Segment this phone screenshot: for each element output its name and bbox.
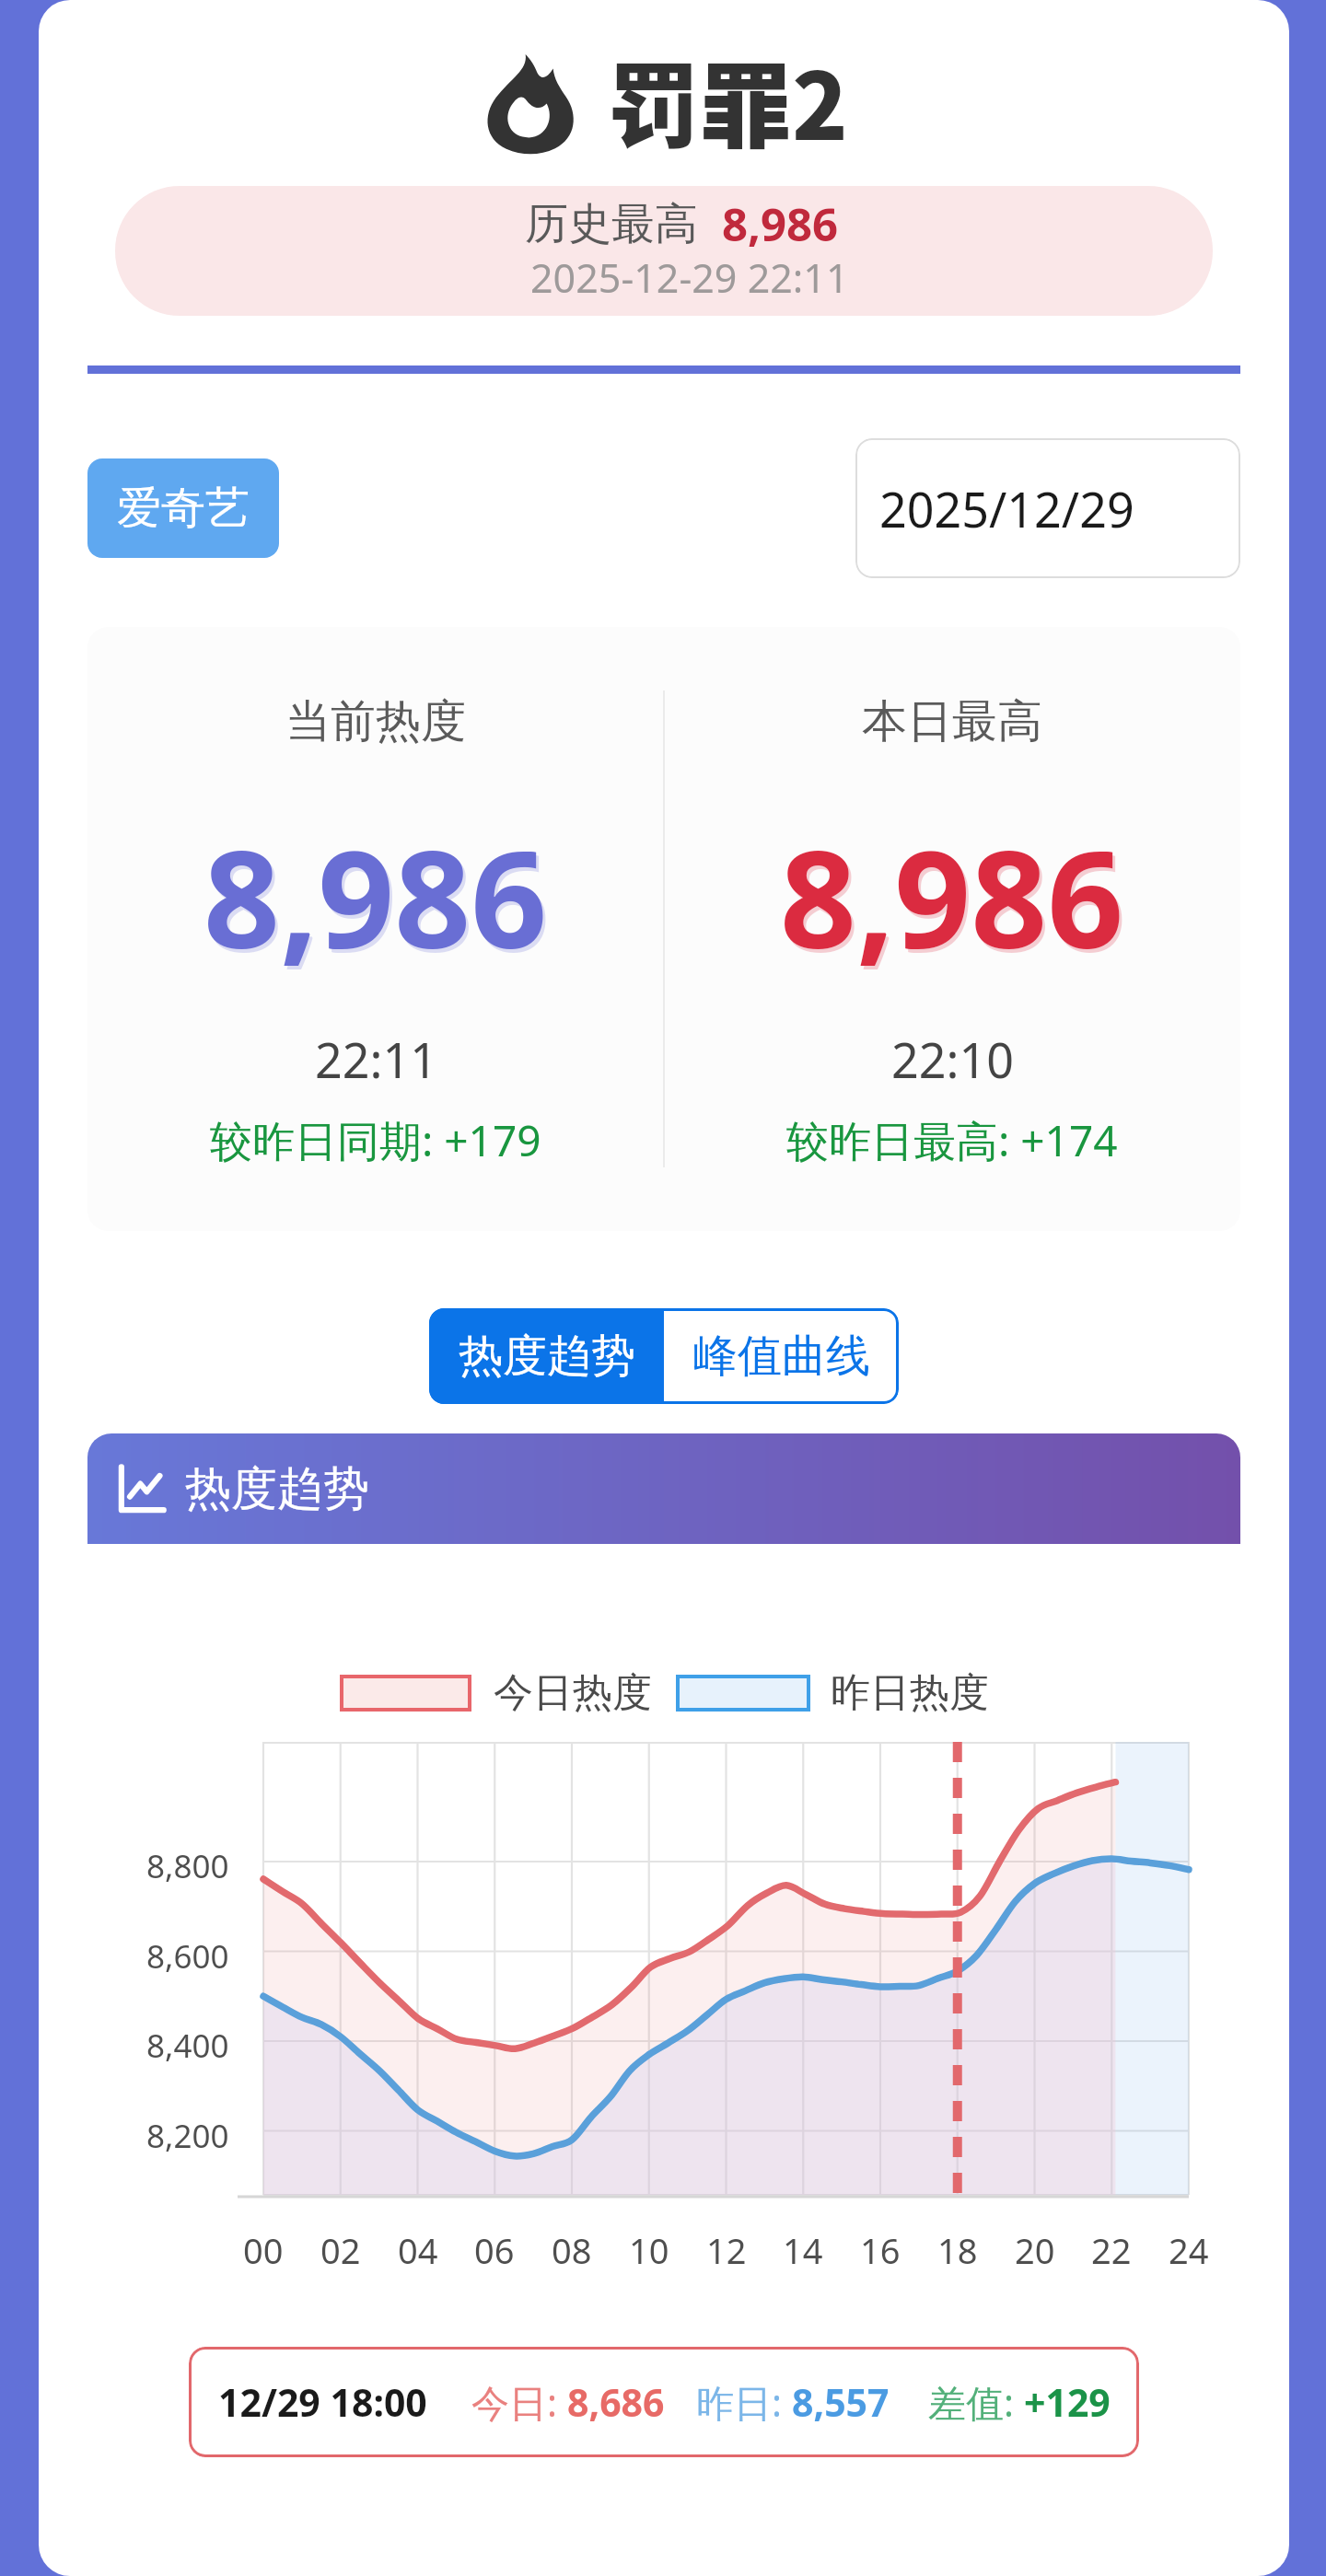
staticText: 热度趋势	[459, 1329, 635, 1384]
staticText: 峰值曲线	[693, 1329, 870, 1384]
staticText: 8,600	[146, 1934, 229, 1978]
staticText: 历史最高	[525, 197, 698, 251]
staticText: 8,200	[146, 2114, 229, 2158]
button[interactable]: 爱奇艺	[87, 458, 279, 558]
staticText: 昨日:	[696, 2376, 792, 2428]
staticText: +129	[1024, 2376, 1111, 2428]
staticText: 10	[629, 2226, 669, 2274]
staticText: 罚罪2	[608, 33, 848, 167]
staticText: 8,400	[146, 2024, 229, 2068]
staticText: 2025-12-29 22:11	[530, 250, 849, 305]
staticText: 8,986	[780, 806, 1124, 987]
staticText: 00	[243, 2226, 284, 2274]
staticText: 8,800	[146, 1844, 229, 1888]
staticText: 14	[783, 2226, 823, 2274]
staticText: 8,986	[783, 809, 1127, 991]
staticText: 本日最高	[862, 693, 1042, 750]
staticText: 06	[474, 2226, 515, 2274]
staticText: 较昨日最高: +174	[786, 1111, 1118, 1169]
staticText: 8,986	[722, 193, 839, 255]
staticText: 今日热度	[494, 1668, 652, 1718]
staticText: 爱奇艺	[117, 481, 250, 536]
staticText: 22	[1091, 2226, 1132, 2274]
staticText: 较昨日同期: +179	[210, 1111, 541, 1169]
staticText: 今日:	[471, 2376, 567, 2428]
staticText: 02	[320, 2226, 361, 2274]
staticText: 差值:	[928, 2376, 1024, 2428]
staticText: 24	[1169, 2226, 1209, 2274]
staticText: 22:11	[315, 1027, 437, 1092]
staticText: 22:10	[891, 1027, 1014, 1092]
staticText: 8,557	[792, 2376, 890, 2428]
staticText: 昨日热度	[831, 1668, 989, 1718]
staticText: 8,686	[567, 2376, 665, 2428]
staticText: 20	[1015, 2226, 1055, 2274]
staticText: 热度趋势	[185, 1460, 369, 1518]
staticText: 当前热度	[285, 693, 466, 750]
button[interactable]: 热度趋势	[429, 1308, 664, 1404]
staticText: 2025/12/29	[879, 476, 1134, 541]
staticText: 16	[860, 2226, 901, 2274]
staticText: 08	[552, 2226, 592, 2274]
button[interactable]: 峰值曲线	[664, 1308, 899, 1404]
button[interactable]: 2025/12/29	[855, 438, 1240, 578]
staticText: 18	[937, 2226, 978, 2274]
staticText: 12/29 18:00	[218, 2376, 427, 2428]
staticText: 8,986	[206, 809, 551, 991]
staticText: 12	[706, 2226, 747, 2274]
staticText: 04	[398, 2226, 438, 2274]
staticText: 8,986	[204, 806, 548, 987]
